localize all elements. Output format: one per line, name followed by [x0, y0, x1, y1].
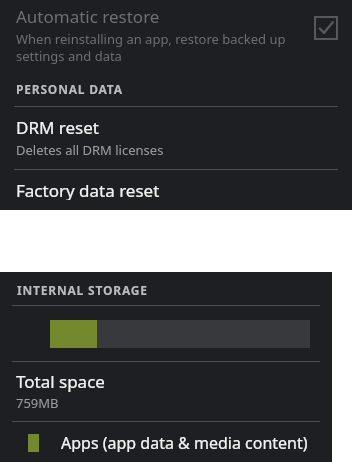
staticText: When reinstalling an app, restore backed…: [16, 30, 304, 65]
staticText: Apps (app data & media content): [61, 432, 308, 452]
staticText: DRM reset: [16, 116, 99, 139]
staticText: Factory data reset: [16, 179, 160, 200]
staticText: 759MB: [16, 394, 59, 412]
button[interactable]: Total space: [0, 362, 332, 421]
staticText: INTERNAL STORAGE: [17, 282, 148, 298]
button[interactable]: Automatic restore: [0, 0, 352, 71]
button[interactable]: DRM reset: [0, 107, 352, 169]
button[interactable]: Apps (app data & media content): [0, 422, 332, 462]
other: Automatic restore checkbox, checked: [314, 16, 338, 40]
staticText: Automatic restore: [16, 5, 160, 28]
staticText: Deletes all DRM licenses: [16, 141, 164, 159]
staticText: Total space: [16, 370, 105, 393]
button[interactable]: Factory data reset: [0, 170, 352, 210]
staticText: PERSONAL DATA: [16, 81, 123, 97]
